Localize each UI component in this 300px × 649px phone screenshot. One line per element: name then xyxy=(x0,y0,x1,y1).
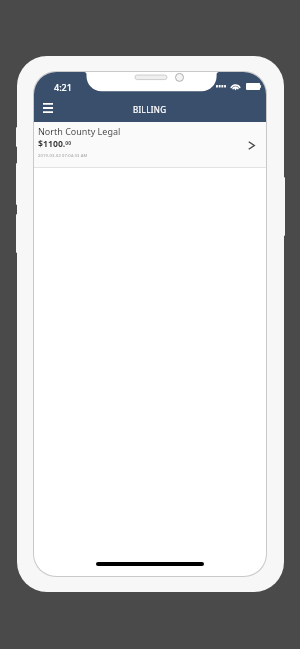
staticText: North County Legal xyxy=(38,125,121,137)
staticText: 2019-03-02 07:04:33 AM xyxy=(38,153,88,158)
staticText: BILLING xyxy=(133,104,167,115)
button[interactable]: Menu xyxy=(38,98,58,117)
button[interactable]: North County Legal xyxy=(34,122,266,168)
button[interactable]: Open billing detail xyxy=(238,132,264,158)
staticText: 4:21 xyxy=(54,81,72,93)
staticText: $1100.00 xyxy=(38,138,72,150)
